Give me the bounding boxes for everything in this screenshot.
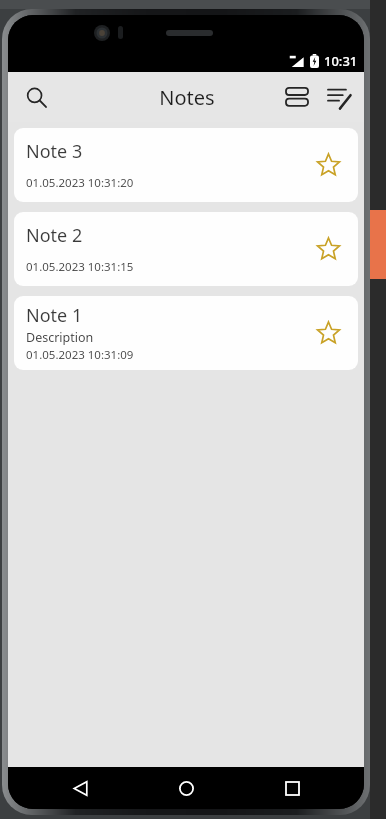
staticText: 01.05.2023 10:31:15: [26, 259, 134, 275]
staticText: Note 1: [26, 303, 83, 328]
button[interactable]: Change layout: [276, 76, 318, 118]
button[interactable]: Recents: [272, 768, 312, 808]
button[interactable]: Home: [166, 768, 206, 808]
button[interactable]: Note 1: [14, 296, 358, 370]
staticText: Notes: [159, 84, 215, 111]
button[interactable]: Edit list: [318, 76, 360, 118]
button[interactable]: Note 3: [14, 128, 358, 202]
button[interactable]: Back: [60, 768, 100, 808]
staticText: 10:31: [324, 52, 358, 70]
staticText: Note 2: [26, 223, 83, 248]
staticText: Description: [26, 329, 94, 346]
button[interactable]: Search: [16, 77, 56, 117]
staticText: Note 3: [26, 139, 83, 164]
button[interactable]: Favourite: [310, 315, 346, 351]
button[interactable]: Note 2: [14, 212, 358, 286]
button[interactable]: Favourite: [310, 231, 346, 267]
staticText: 01.05.2023 10:31:20: [26, 175, 134, 191]
button[interactable]: Favourite: [310, 147, 346, 183]
staticText: 01.05.2023 10:31:09: [26, 347, 134, 363]
